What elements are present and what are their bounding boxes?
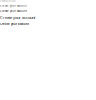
staticText: Create your account [0, 9, 27, 13]
staticText: Create your account [0, 4, 27, 7]
staticText: Create your account [0, 15, 35, 20]
staticText: Create your account [0, 0, 15, 2]
staticText: Create your account [0, 22, 29, 26]
